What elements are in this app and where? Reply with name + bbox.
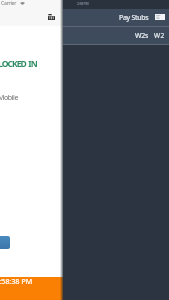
staticText: LOCKED IN: [0, 58, 37, 70]
button[interactable]: [0, 236, 10, 249]
button[interactable]: Pay Stubs: [63, 9, 169, 26]
staticText: 2:58:38 PM: [0, 276, 33, 286]
button[interactable]: W2s: [63, 27, 169, 44]
button[interactable]: Office: [46, 11, 57, 22]
staticText: 2:58 PM: [77, 1, 89, 6]
staticText: W2: [154, 31, 165, 40]
staticText: W2s: [135, 31, 149, 41]
staticText: Pay Stubs: [119, 13, 149, 23]
staticText: Carrier: [1, 0, 17, 7]
staticText: Mobile: [0, 93, 18, 103]
